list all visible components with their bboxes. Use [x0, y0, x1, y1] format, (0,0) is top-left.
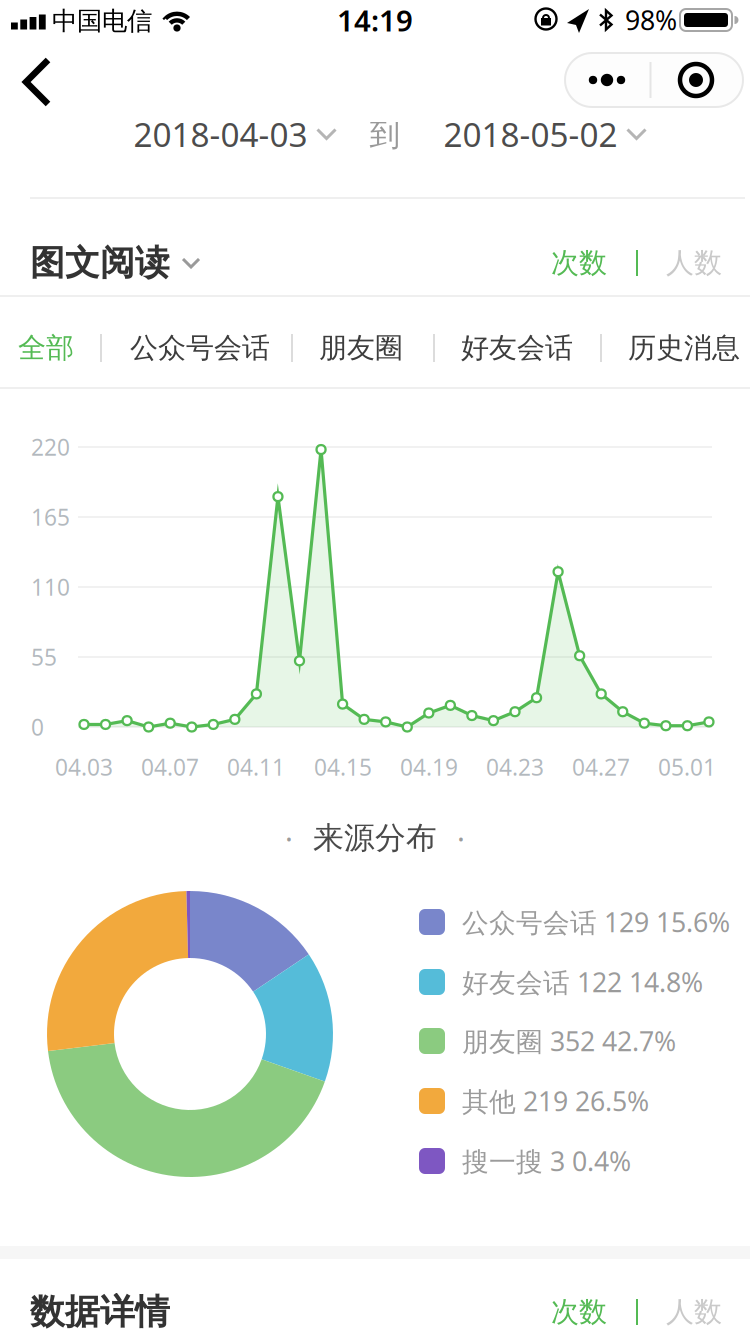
- staticText: 人数: [666, 1295, 722, 1329]
- staticText: 04.15: [314, 752, 372, 782]
- staticText: 14:19: [337, 0, 413, 39]
- staticText: 到: [369, 116, 400, 154]
- staticText: 04.11: [227, 752, 285, 782]
- staticText: 好友会话: [461, 331, 573, 365]
- staticText: 朋友圈 352 42.7%: [462, 1023, 676, 1059]
- button[interactable]: 人数: [649, 241, 739, 285]
- staticText: 次数: [551, 1295, 607, 1329]
- staticText: 数据详情: [30, 1291, 170, 1333]
- staticText: 次数: [551, 246, 607, 280]
- button[interactable]: 全部: [18, 318, 74, 378]
- staticText: 05.01: [658, 752, 716, 782]
- staticText: 公众号会话: [130, 331, 270, 365]
- staticText: 04.19: [400, 752, 458, 782]
- button[interactable]: 公众号会话: [130, 318, 270, 378]
- button[interactable]: 2018-05-02: [443, 112, 646, 156]
- button[interactable]: More: [564, 52, 650, 108]
- button[interactable]: 好友会话: [461, 318, 573, 378]
- staticText: 165: [31, 502, 70, 532]
- staticText: 110: [31, 572, 70, 602]
- button[interactable]: Back: [10, 40, 74, 124]
- button[interactable]: 历史消息: [628, 318, 740, 378]
- staticText: 220: [31, 432, 70, 462]
- staticText: 好友会话 122 14.8%: [462, 964, 703, 1000]
- staticText: 图文阅读: [30, 242, 170, 284]
- button[interactable]: 2018-04-03: [133, 112, 336, 156]
- staticText: 04.23: [486, 752, 544, 782]
- staticText: ·: [457, 818, 465, 857]
- staticText: 搜一搜 3 0.4%: [462, 1143, 631, 1179]
- staticText: 04.03: [55, 752, 113, 782]
- staticText: 2018-05-02: [443, 112, 617, 156]
- staticText: 公众号会话 129 15.6%: [462, 904, 730, 940]
- staticText: 历史消息: [628, 331, 740, 365]
- staticText: 04.07: [141, 752, 199, 782]
- button[interactable]: Close: [654, 52, 741, 108]
- button[interactable]: 人数: [649, 1290, 739, 1334]
- staticText: ·: [285, 818, 293, 857]
- staticText: 04.27: [572, 752, 630, 782]
- button[interactable]: 朋友圈: [319, 318, 403, 378]
- staticText: 朋友圈: [319, 331, 403, 365]
- staticText: 来源分布: [313, 819, 437, 857]
- button[interactable]: 次数: [534, 1290, 624, 1334]
- staticText: 55: [31, 642, 57, 672]
- button[interactable]: 图文阅读: [30, 242, 200, 284]
- staticText: 人数: [666, 246, 722, 280]
- staticText: 其他 219 26.5%: [462, 1083, 649, 1119]
- staticText: 0: [31, 712, 44, 742]
- staticText: 中国电信: [52, 5, 152, 36]
- button[interactable]: 次数: [534, 241, 624, 285]
- staticText: 2018-04-03: [133, 112, 307, 156]
- staticText: 98%: [625, 2, 677, 38]
- staticText: 全部: [18, 331, 74, 365]
